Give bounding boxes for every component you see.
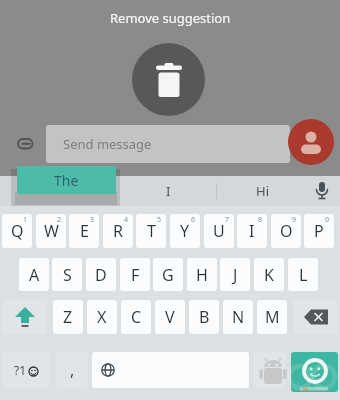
button[interactable]: E	[69, 214, 99, 248]
button[interactable]: T	[136, 214, 166, 248]
staticText: Remove suggestion	[110, 9, 231, 27]
button[interactable]: D	[86, 258, 116, 291]
staticText: 2	[57, 215, 62, 225]
staticText: J	[233, 264, 238, 286]
staticText: U	[213, 220, 225, 242]
staticText: M	[265, 306, 280, 328]
staticText: Z	[63, 306, 73, 328]
button[interactable]: P	[304, 214, 334, 248]
button[interactable]: S	[52, 258, 82, 291]
staticText: P	[314, 220, 324, 242]
button[interactable]: M	[257, 300, 287, 334]
button[interactable]: B	[189, 300, 219, 334]
button[interactable]: U	[204, 214, 234, 248]
button[interactable]	[132, 43, 205, 116]
staticText: 1	[23, 215, 28, 225]
staticText: ?1	[14, 362, 27, 378]
staticText: X	[97, 306, 107, 328]
button[interactable]: F	[120, 258, 150, 291]
button[interactable]: Q	[2, 214, 32, 248]
staticText: A	[29, 264, 40, 286]
button[interactable]: Send message	[46, 125, 290, 163]
staticText: I	[166, 182, 171, 200]
button[interactable]: The	[17, 166, 116, 194]
staticText: E	[80, 220, 89, 242]
button[interactable]: X	[87, 300, 117, 334]
staticText: Hi	[256, 182, 269, 200]
staticText: I	[249, 220, 255, 242]
button[interactable]	[92, 352, 124, 388]
button[interactable]: G	[153, 258, 183, 291]
staticText: T	[147, 220, 156, 242]
staticText: D	[95, 264, 107, 286]
button[interactable]: O	[271, 214, 301, 248]
staticText: O	[280, 220, 293, 242]
staticText: H	[196, 264, 208, 286]
staticText: 5	[157, 215, 162, 225]
staticText: 7	[225, 215, 230, 225]
button[interactable]	[288, 119, 334, 165]
button[interactable]	[291, 352, 338, 392]
staticText: B	[199, 306, 210, 328]
button[interactable]	[306, 176, 338, 206]
button[interactable]	[2, 300, 47, 334]
staticText: 8	[258, 215, 263, 225]
button[interactable]: K	[254, 258, 284, 291]
button[interactable]	[253, 352, 286, 388]
button[interactable]: Hi	[218, 176, 306, 206]
staticText: 6	[191, 215, 196, 225]
button[interactable]: C	[121, 300, 151, 334]
staticText: G	[162, 264, 174, 286]
staticText: R	[113, 220, 123, 242]
button[interactable]: L	[288, 258, 318, 291]
button[interactable]: Y	[170, 214, 200, 248]
button[interactable]: ?1	[2, 352, 50, 388]
button[interactable]: J	[220, 258, 250, 291]
staticText: 4	[124, 215, 129, 225]
staticText: F	[131, 264, 140, 286]
staticText: W	[44, 220, 59, 242]
button[interactable]: A	[19, 258, 49, 291]
button[interactable]: I	[237, 214, 267, 248]
staticText: L	[299, 264, 308, 286]
button[interactable]	[293, 300, 338, 334]
staticText: Q	[11, 220, 24, 242]
button[interactable]: N	[223, 300, 253, 334]
staticText: K	[264, 264, 274, 286]
staticText: V	[165, 306, 175, 328]
button[interactable]: I	[120, 176, 217, 206]
staticText: S	[63, 264, 72, 286]
staticText: Send message	[63, 135, 152, 153]
button[interactable]: V	[155, 300, 185, 334]
staticText: The	[54, 171, 79, 190]
staticText: 9	[292, 215, 297, 225]
button[interactable]: ,	[56, 352, 88, 388]
staticText: N	[232, 306, 245, 328]
button[interactable]: W	[36, 214, 66, 248]
staticText: 3	[90, 215, 95, 225]
staticText: 0	[325, 215, 330, 225]
staticText: C	[131, 306, 142, 328]
button[interactable]: R	[103, 214, 133, 248]
button[interactable]: H	[187, 258, 217, 291]
button[interactable]: Z	[53, 300, 83, 334]
staticText: Y	[180, 220, 190, 242]
staticText: ,	[70, 359, 75, 381]
